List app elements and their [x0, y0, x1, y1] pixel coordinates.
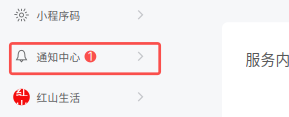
button[interactable]: 小程序码 [1, 0, 162, 30]
staticText: 1 [88, 50, 93, 63]
staticText: 通知中心 [36, 49, 80, 64]
staticText: 小程序码 [36, 7, 80, 23]
button[interactable]: 红山 [1, 82, 162, 112]
staticText: 红山 [16, 84, 27, 113]
button[interactable]: 通知中心 [1, 41, 162, 71]
staticText: 服务内 [245, 48, 289, 69]
staticText: 红山生活 [36, 89, 80, 105]
